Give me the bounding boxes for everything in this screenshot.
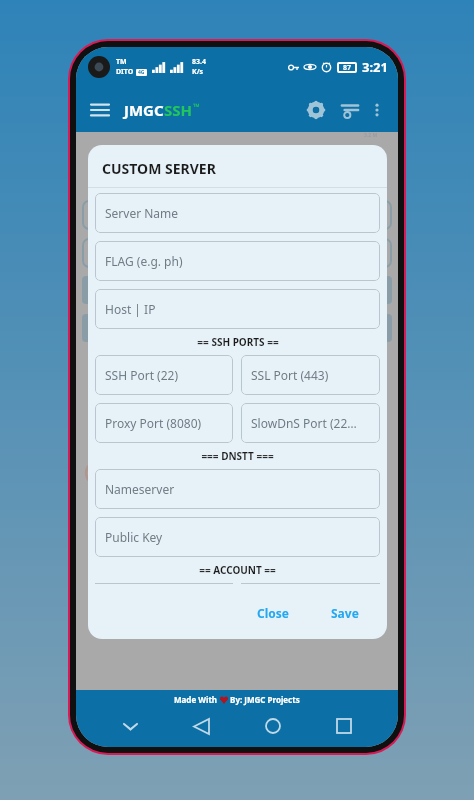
button[interactable]: More options (364, 97, 390, 123)
staticText: Proxy Port (8080) (105, 415, 202, 431)
button[interactable]: SlowDnS Port (22… (241, 403, 380, 443)
staticText: 4G (138, 69, 145, 76)
staticText: Made With (174, 694, 220, 705)
staticText: DITO (116, 67, 134, 77)
staticText: Host | IP (105, 301, 156, 317)
staticText: 3:21 (362, 58, 388, 76)
button[interactable]: Server Name (95, 193, 380, 233)
button[interactable]: Close (249, 601, 297, 625)
button[interactable]: Hide keyboard (113, 709, 147, 743)
staticText: TM (116, 57, 127, 67)
staticText: 3.2 M (364, 132, 378, 139)
button[interactable]: Save (323, 601, 367, 625)
staticText: SSH Port (22) (105, 367, 179, 383)
staticText: SSL Port (443) (251, 367, 329, 383)
staticText: Close (257, 605, 289, 621)
staticText: FLAG (e.g. ph) (105, 253, 183, 269)
staticText: Server Name (105, 205, 179, 221)
button[interactable]: Settings (302, 96, 330, 124)
button[interactable]: FLAG (e.g. ph) (95, 241, 380, 281)
button[interactable]: Home (256, 709, 290, 743)
staticText: 87 (343, 63, 352, 73)
staticText: CUSTOM SERVER (102, 159, 216, 178)
staticText: === DNSTT === (201, 449, 274, 463)
staticText: == SSH PORTS == (197, 335, 279, 349)
staticText: ™ (193, 100, 200, 112)
button[interactable]: Proxy Port (8080) (95, 403, 233, 443)
button[interactable]: Boost (336, 96, 364, 124)
staticText: SSH (164, 100, 193, 120)
staticText: K/s (192, 67, 204, 77)
staticText: Save (331, 605, 359, 621)
staticText: == ACCOUNT == (199, 563, 276, 577)
button[interactable]: SSH Port (22) (95, 355, 233, 395)
button[interactable]: Back (184, 709, 218, 743)
staticText: By: JMGC Projects (228, 694, 300, 705)
button[interactable]: Menu (86, 96, 114, 124)
staticText: Public Key (105, 529, 163, 545)
staticText: Nameserver (105, 481, 175, 497)
staticText: JMGC (124, 100, 164, 120)
staticText: 2.4 M (364, 144, 378, 151)
button[interactable]: Public Key (95, 517, 380, 557)
staticText: SlowDnS Port (22… (251, 415, 357, 431)
staticText: 83.4 (192, 57, 206, 67)
button[interactable]: Recent apps (327, 709, 361, 743)
button[interactable]: Host | IP (95, 289, 380, 329)
button[interactable]: Nameserver (95, 469, 380, 509)
button[interactable]: SSL Port (443) (241, 355, 380, 395)
